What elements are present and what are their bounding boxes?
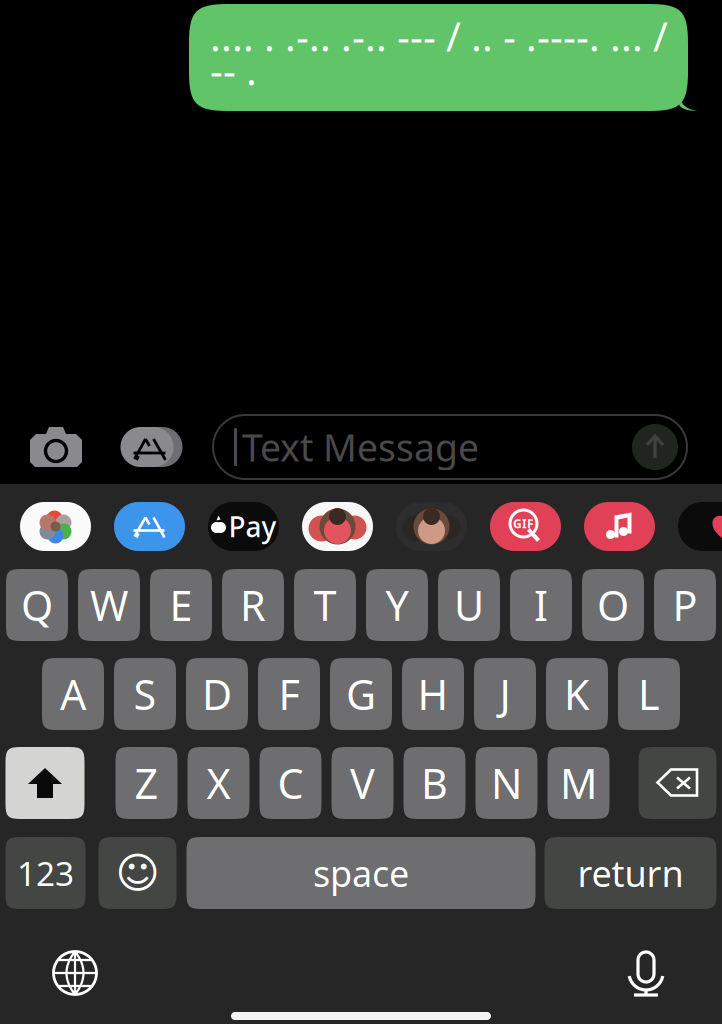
button[interactable]: N <box>475 747 537 819</box>
staticText: C <box>277 756 303 810</box>
button[interactable]: Photos <box>20 502 91 551</box>
staticText: E <box>169 578 192 632</box>
staticText: T <box>313 578 336 632</box>
button[interactable]: R <box>222 569 284 641</box>
button[interactable]: L <box>618 658 680 730</box>
button[interactable]: Delete <box>638 747 716 819</box>
button[interactable]: E <box>150 569 212 641</box>
staticText: V <box>350 756 375 810</box>
button[interactable]: Y <box>366 569 428 641</box>
button[interactable]: W <box>78 569 140 641</box>
staticText: Z <box>134 756 158 810</box>
button[interactable]: More apps <box>678 502 722 551</box>
staticText: U <box>454 578 484 632</box>
button[interactable]: H <box>402 658 464 730</box>
staticText: Y <box>385 578 408 632</box>
staticText: Q <box>21 578 53 632</box>
staticText: -- . <box>210 43 257 96</box>
button[interactable]: B <box>403 747 465 819</box>
staticText: X <box>206 756 230 810</box>
button[interactable]: Memoji <box>396 502 467 551</box>
button[interactable]: Dictation <box>628 948 664 998</box>
staticText: H <box>417 667 448 721</box>
staticText: N <box>491 756 522 810</box>
button[interactable]: A <box>42 658 104 730</box>
staticText: L <box>638 667 660 721</box>
staticText: P <box>672 578 697 632</box>
staticText: F <box>278 667 299 721</box>
button[interactable]: F <box>258 658 320 730</box>
button[interactable]: K <box>546 658 608 730</box>
button[interactable]: X <box>187 747 249 819</box>
button[interactable]: P <box>654 569 716 641</box>
button[interactable]: O <box>582 569 644 641</box>
button[interactable]: Z <box>115 747 177 819</box>
button[interactable]: Camera <box>30 426 82 468</box>
staticText: Text Message <box>242 422 479 472</box>
button[interactable]: Apple Pay <box>208 502 279 551</box>
staticText: J <box>499 667 510 721</box>
staticText: .... . .-.. .-.. --- / .. - .----. ... / <box>210 9 668 62</box>
staticText: GIF <box>513 515 534 531</box>
button[interactable]: Music <box>584 502 655 551</box>
button[interactable]: G <box>330 658 392 730</box>
button[interactable]: 123 <box>5 837 85 909</box>
button[interactable]: Apps <box>120 426 182 468</box>
button[interactable]: Shift <box>5 747 84 819</box>
button[interactable]: return <box>544 837 716 909</box>
staticText: space <box>313 849 409 897</box>
button[interactable]: space <box>186 837 535 909</box>
button[interactable]: C <box>259 747 321 819</box>
button[interactable]: V <box>331 747 393 819</box>
button[interactable]: J <box>474 658 536 730</box>
staticText: return <box>577 849 683 897</box>
button[interactable]: D <box>186 658 248 730</box>
staticText: R <box>240 578 266 632</box>
staticText: 123 <box>17 851 74 895</box>
button[interactable]: Q <box>6 569 68 641</box>
button[interactable]: I <box>510 569 572 641</box>
staticText: A <box>60 667 86 721</box>
staticText: O <box>597 578 629 632</box>
button[interactable]: Stickers <box>302 502 373 551</box>
staticText: S <box>133 667 156 721</box>
staticText: B <box>421 756 448 810</box>
button[interactable]: Images <box>490 502 561 551</box>
staticText: D <box>202 667 232 721</box>
staticText: ☺ <box>115 849 159 897</box>
button[interactable]: Emoji <box>98 837 176 909</box>
staticText: M <box>560 756 597 810</box>
button[interactable]: Switch Keyboard <box>52 950 98 996</box>
button[interactable]: S <box>114 658 176 730</box>
staticText: I <box>534 578 548 632</box>
button[interactable]: T <box>294 569 356 641</box>
staticText: K <box>564 667 590 721</box>
button[interactable]: U <box>438 569 500 641</box>
button[interactable]: App Store <box>114 502 185 551</box>
button[interactable]: M <box>547 747 609 819</box>
staticText: G <box>346 667 376 721</box>
staticText: Pay <box>228 508 276 545</box>
button[interactable]: Send <box>632 424 678 470</box>
staticText: W <box>90 578 128 632</box>
